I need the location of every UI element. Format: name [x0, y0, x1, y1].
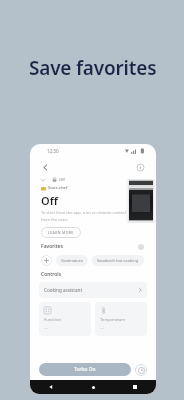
staticText: Function [44, 317, 62, 323]
button[interactable]: Home [72, 380, 114, 394]
staticText: — [100, 325, 104, 330]
staticText: — [44, 325, 48, 330]
staticText: To start from the app, turn on remote co… [41, 210, 126, 222]
button[interactable]: Back [39, 161, 52, 174]
staticText: Gratinatura [61, 258, 83, 263]
button[interactable]: Turbo On [39, 363, 131, 376]
staticText: Favorites [41, 243, 63, 250]
button[interactable]: Add favorite [41, 255, 52, 266]
staticText: Cooking assistant [44, 287, 83, 293]
staticText: Sandwich hot cooking [97, 258, 139, 263]
staticText: Off [59, 177, 65, 182]
button[interactable]: Sandwich hot cooking [92, 255, 144, 266]
staticText: LEARN MORE [48, 230, 74, 235]
staticText: Controls [41, 271, 62, 278]
button[interactable]: Temperature [95, 302, 147, 336]
staticText: Sous-chef [48, 185, 68, 191]
button[interactable]: Info [134, 161, 147, 174]
staticText: Turbo On [74, 366, 96, 373]
button[interactable]: Timer [135, 364, 147, 376]
staticText: Off [41, 193, 58, 208]
button[interactable]: LEARN MORE [41, 227, 81, 238]
staticText: Temperature [100, 317, 126, 323]
button[interactable]: Recents [114, 380, 156, 394]
staticText: 12:30 [47, 148, 59, 154]
button[interactable]: Cooking assistant [39, 282, 147, 298]
staticText: Save favorites [29, 55, 157, 81]
button[interactable]: Gratinatura [56, 255, 88, 266]
button[interactable]: Back [30, 380, 72, 394]
button[interactable]: Function [39, 302, 91, 336]
button[interactable]: Favorites info [136, 242, 145, 251]
